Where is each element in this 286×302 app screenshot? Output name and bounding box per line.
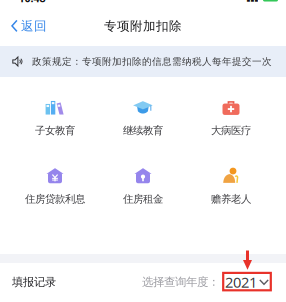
- staticText: 赡养老人: [211, 192, 251, 205]
- button[interactable]: 子女教育: [11, 101, 99, 136]
- button[interactable]: 大病医疗: [187, 101, 275, 136]
- staticText: 填报记录: [12, 275, 56, 289]
- staticText: 住房租金: [123, 192, 163, 205]
- staticText: 10:48: [18, 0, 45, 5]
- button[interactable]: 住房贷款利息: [11, 169, 99, 204]
- staticText: 住房贷款利息: [25, 192, 85, 205]
- button[interactable]: 返回: [0, 6, 70, 46]
- staticText: 专项附加扣除: [104, 18, 182, 34]
- button[interactable]: 2021: [219, 267, 286, 297]
- staticText: 返回: [21, 18, 47, 34]
- button[interactable]: 住房租金: [99, 169, 187, 204]
- button[interactable]: 赡养老人: [187, 169, 275, 204]
- staticText: ▮▮▮: [246, 0, 258, 3]
- staticText: 大病医疗: [211, 124, 251, 137]
- staticText: 2021: [225, 272, 257, 292]
- staticText: 继续教育: [123, 124, 163, 137]
- staticText: 子女教育: [35, 124, 75, 137]
- staticText: 政策规定：专项附加扣除的信息需纳税人每年提交一次: [32, 55, 272, 68]
- button[interactable]: 继续教育: [99, 101, 187, 136]
- staticText: 选择查询年度：: [142, 275, 219, 289]
